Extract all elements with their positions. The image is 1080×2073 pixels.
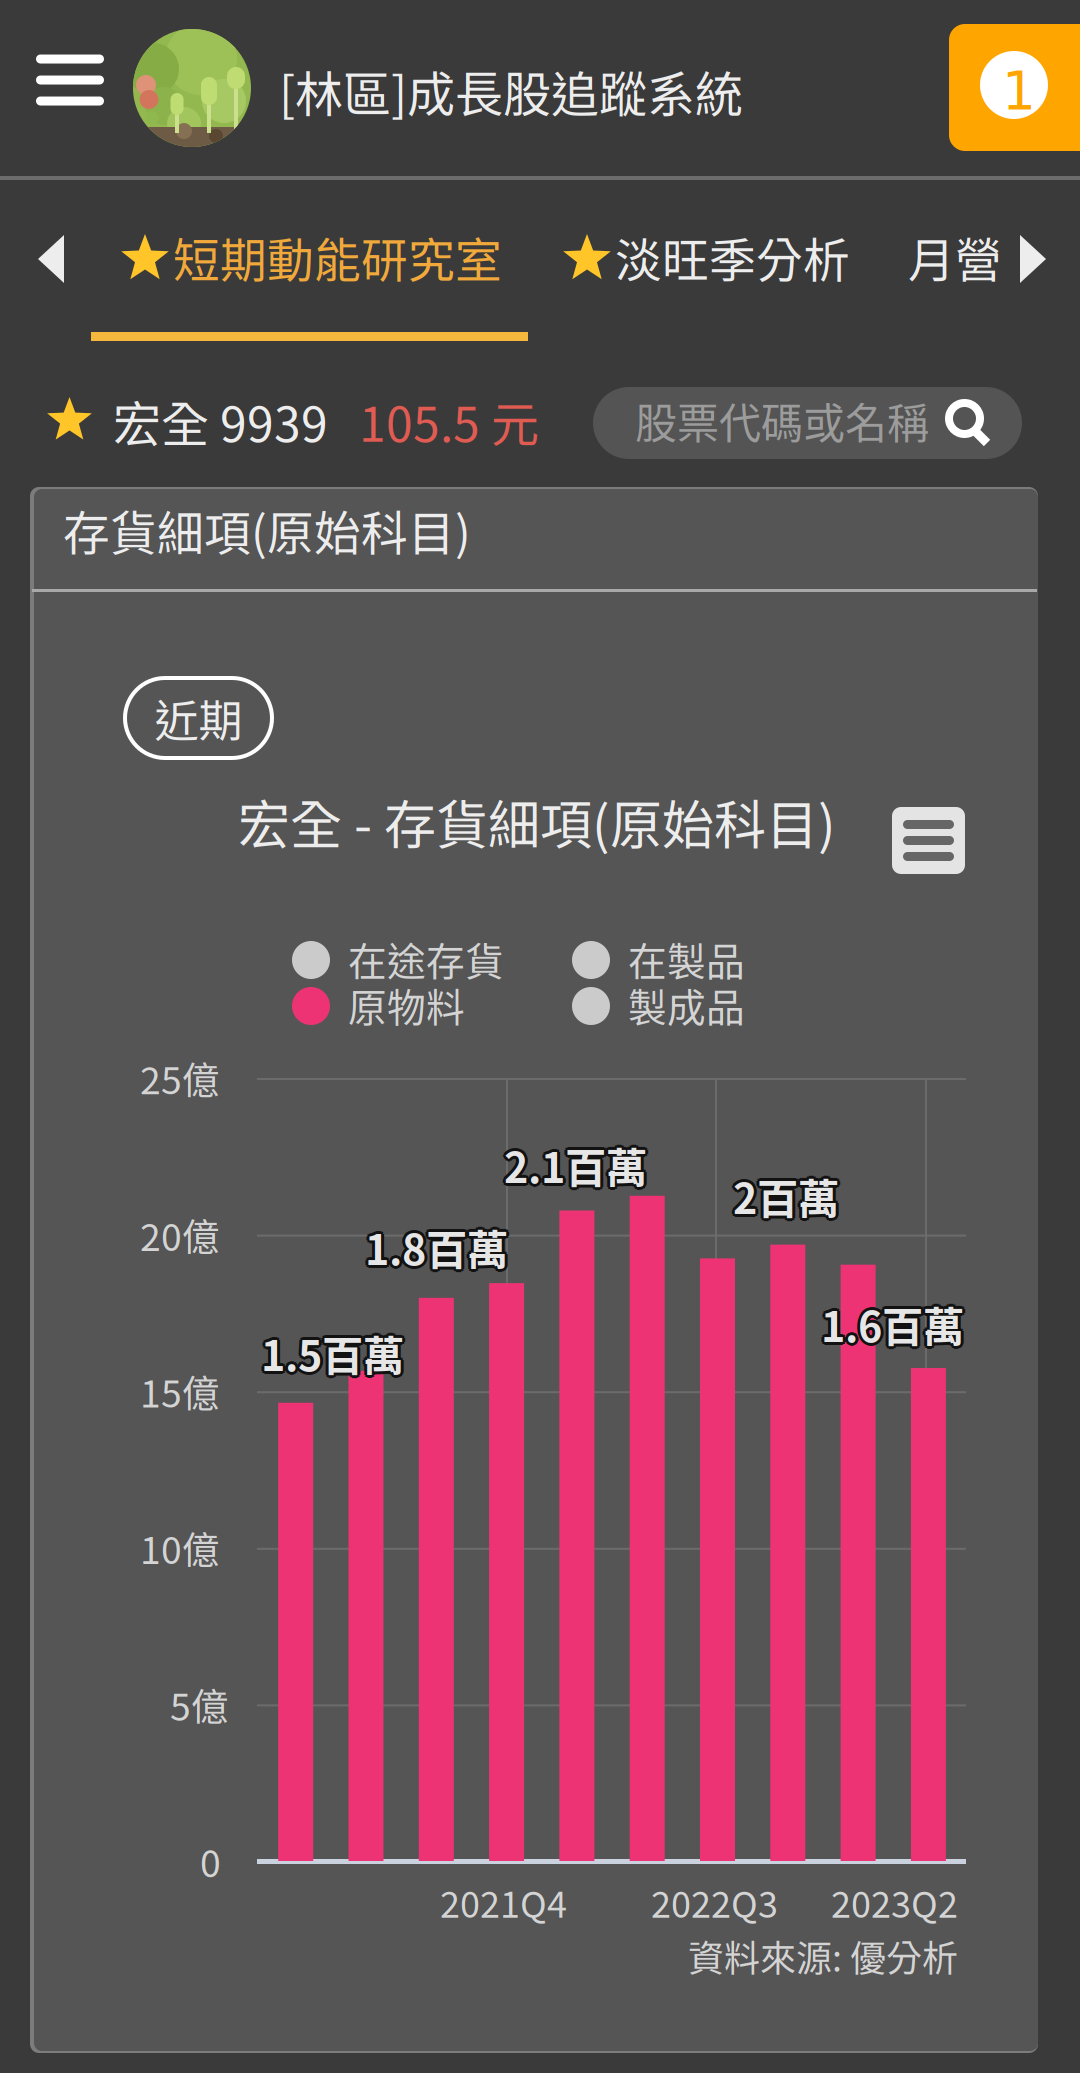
staticText: 1.5百萬 bbox=[261, 1326, 404, 1386]
staticText: 2.1百萬 bbox=[501, 1135, 644, 1195]
staticText: 0 bbox=[200, 1834, 221, 1888]
staticText: 原物料 bbox=[348, 977, 465, 1033]
staticText: 月營 bbox=[908, 223, 1002, 291]
staticText: 2.1百萬 bbox=[504, 1132, 647, 1192]
staticText: 2百萬 bbox=[731, 1164, 837, 1224]
staticText: 2.1百萬 bbox=[506, 1133, 649, 1193]
staticText: 2百萬 bbox=[735, 1168, 841, 1228]
staticText: 2百萬 bbox=[736, 1166, 842, 1226]
staticText: 2.1百萬 bbox=[502, 1133, 645, 1193]
staticText: 製成品 bbox=[628, 977, 745, 1033]
staticText: 1.8百萬 bbox=[363, 1215, 506, 1275]
staticText: 1.5百萬 bbox=[263, 1325, 406, 1385]
staticText: 淡旺季分析 bbox=[615, 223, 850, 291]
button[interactable]: 近期 bbox=[125, 678, 272, 758]
button[interactable]: Previous tabs bbox=[30, 229, 74, 289]
staticText: 2.1百萬 bbox=[502, 1137, 645, 1197]
staticText: 2023Q2 bbox=[831, 1876, 958, 1928]
staticText: 1.5百萬 bbox=[261, 1323, 404, 1383]
staticText: 1.5百萬 bbox=[259, 1325, 402, 1385]
staticText: 2021Q4 bbox=[440, 1876, 567, 1928]
button[interactable]: 月營 bbox=[908, 223, 1002, 297]
staticText: 2.1百萬 bbox=[504, 1138, 647, 1198]
staticText: 105.5 元 bbox=[359, 386, 539, 455]
button[interactable]: More tabs bbox=[1012, 229, 1056, 289]
staticText: 1.5百萬 bbox=[261, 1320, 404, 1380]
staticText: 資料來源: 優分析 bbox=[688, 1930, 958, 1982]
staticText: 20億 bbox=[140, 1208, 219, 1262]
staticText: 1.6百萬 bbox=[823, 1296, 966, 1356]
button[interactable]: 淡旺季分析 bbox=[562, 223, 852, 297]
staticText: 在途存貨 bbox=[348, 931, 504, 987]
button[interactable]: Menu bbox=[20, 25, 120, 135]
staticText: 15億 bbox=[140, 1364, 219, 1418]
staticText: 2百萬 bbox=[733, 1166, 839, 1226]
staticText: 1.6百萬 bbox=[819, 1296, 962, 1356]
staticText: 1.8百萬 bbox=[365, 1214, 508, 1274]
staticText: 在製品 bbox=[628, 931, 745, 987]
staticText: 5億 bbox=[170, 1677, 228, 1731]
staticText: [林區]成長股追蹤系統 bbox=[279, 56, 743, 125]
staticText: 1.8百萬 bbox=[365, 1220, 508, 1280]
staticText: 1.6百萬 bbox=[821, 1297, 964, 1357]
staticText: 10億 bbox=[140, 1521, 219, 1575]
button[interactable]: 股票代碼或名稱 bbox=[593, 387, 1022, 459]
staticText: 2百萬 bbox=[730, 1166, 836, 1226]
staticText: 2022Q3 bbox=[651, 1876, 778, 1928]
staticText: 1.8百萬 bbox=[367, 1215, 510, 1275]
staticText: 1.5百萬 bbox=[264, 1323, 407, 1383]
staticText: 1.6百萬 bbox=[824, 1294, 967, 1354]
staticText: 宏全 9939 bbox=[113, 386, 328, 455]
staticText: 股票代碼或名稱 bbox=[635, 390, 929, 451]
staticText: 2百萬 bbox=[735, 1164, 841, 1224]
button[interactable]: Notifications bbox=[949, 24, 1080, 151]
staticText: 宏全 - 存貨細項(原始科目) bbox=[238, 784, 836, 859]
staticText: 1.6百萬 bbox=[818, 1294, 961, 1354]
staticText: 1.6百萬 bbox=[821, 1291, 964, 1351]
staticText: 2.1百萬 bbox=[504, 1135, 647, 1195]
staticText: 1.8百萬 bbox=[365, 1217, 508, 1277]
staticText: 近期 bbox=[154, 686, 242, 750]
staticText: 1 bbox=[1002, 60, 1036, 122]
staticText: 1.8百萬 bbox=[367, 1219, 510, 1279]
staticText: 1.8百萬 bbox=[363, 1219, 506, 1279]
staticText: 2百萬 bbox=[733, 1169, 839, 1229]
button[interactable]: 短期動能研究室 bbox=[120, 223, 500, 297]
staticText: 2百萬 bbox=[733, 1163, 839, 1223]
staticText: 1.5百萬 bbox=[259, 1321, 402, 1381]
staticText: 2.1百萬 bbox=[506, 1137, 649, 1197]
staticText: 短期動能研究室 bbox=[173, 223, 502, 291]
staticText: 2百萬 bbox=[731, 1168, 837, 1228]
button[interactable]: Chart menu bbox=[892, 807, 965, 874]
staticText: 2.1百萬 bbox=[507, 1135, 650, 1195]
staticText: 1.6百萬 bbox=[821, 1294, 964, 1354]
staticText: 1.5百萬 bbox=[258, 1323, 401, 1383]
staticText: 1.8百萬 bbox=[362, 1217, 505, 1277]
staticText: 1.8百萬 bbox=[368, 1217, 511, 1277]
staticText: 存貨細項(原始科目) bbox=[63, 496, 471, 564]
staticText: 1.6百萬 bbox=[823, 1292, 966, 1352]
staticText: 1.5百萬 bbox=[263, 1321, 406, 1381]
staticText: 25億 bbox=[140, 1051, 219, 1105]
staticText: 1.6百萬 bbox=[819, 1292, 962, 1352]
